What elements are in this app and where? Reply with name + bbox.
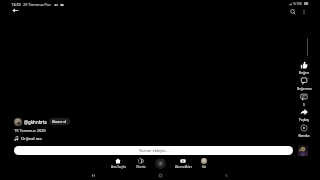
button[interactable]: Create [155, 158, 166, 169]
button[interactable]: Back [222, 171, 230, 179]
button[interactable]: Home [156, 171, 164, 179]
button[interactable]: Dislike [293, 77, 315, 90]
button[interactable]: Back [9, 4, 22, 17]
staticText: 5 [303, 102, 305, 106]
button[interactable]: Shorts [126, 158, 156, 169]
staticText: %100 [293, 1, 303, 6]
staticText: Ana Sayfa [111, 165, 126, 169]
button[interactable]: Recents [89, 171, 97, 179]
button[interactable]: Ana Sayfa [103, 158, 133, 169]
button[interactable]: Remix [293, 124, 315, 137]
button[interactable]: Abone ol [52, 118, 67, 125]
staticText: Beğen [299, 70, 309, 74]
staticText: 20 Temmuz Paz [23, 2, 51, 7]
button[interactable]: Search [286, 5, 299, 18]
button[interactable]: Like [293, 61, 315, 74]
staticText: Paylaş [299, 117, 309, 121]
button[interactable]: Abonelikler [168, 158, 198, 169]
button[interactable]: Comments [293, 93, 315, 106]
button[interactable]: Video thumbnail [298, 145, 308, 156]
staticText: Abonelikler [175, 165, 192, 169]
staticText: 13:33 [11, 2, 21, 7]
staticText: Yorum ekleyin... [139, 148, 169, 153]
button[interactable]: Yorum ekleyin... [14, 146, 293, 155]
staticText: Shorts [136, 165, 146, 169]
staticText: Beğenme [297, 86, 312, 90]
button[interactable]: More options [297, 5, 310, 18]
staticText: Remiks [298, 133, 310, 137]
staticText: Abone ol [52, 119, 67, 124]
staticText: Orijinal ses [21, 136, 42, 141]
staticText: 15 Temmuz 2025 [14, 128, 46, 133]
button[interactable]: @gkhnkrts [14, 117, 70, 126]
button[interactable]: Share [293, 108, 315, 121]
button[interactable]: Siz [189, 158, 219, 169]
staticText: Siz [202, 165, 207, 169]
staticText: @gkhnkrts [24, 119, 47, 125]
